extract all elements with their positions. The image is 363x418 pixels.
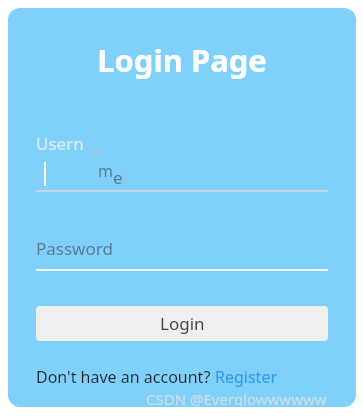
staticText: Login: [160, 312, 205, 335]
button[interactable]: Login: [36, 306, 328, 341]
button[interactable]: Register: [215, 366, 278, 388]
staticText: Password: [36, 237, 113, 260]
staticText: a: [90, 141, 98, 160]
staticText: e: [113, 166, 123, 189]
staticText: Usern: [36, 132, 84, 155]
staticText: Register: [215, 366, 278, 388]
staticText: Login Page: [8, 39, 356, 81]
staticText: CSDN @Everglowwwwww: [146, 389, 327, 407]
staticText: m: [98, 160, 113, 182]
staticText: Don't have an account?: [36, 366, 215, 388]
